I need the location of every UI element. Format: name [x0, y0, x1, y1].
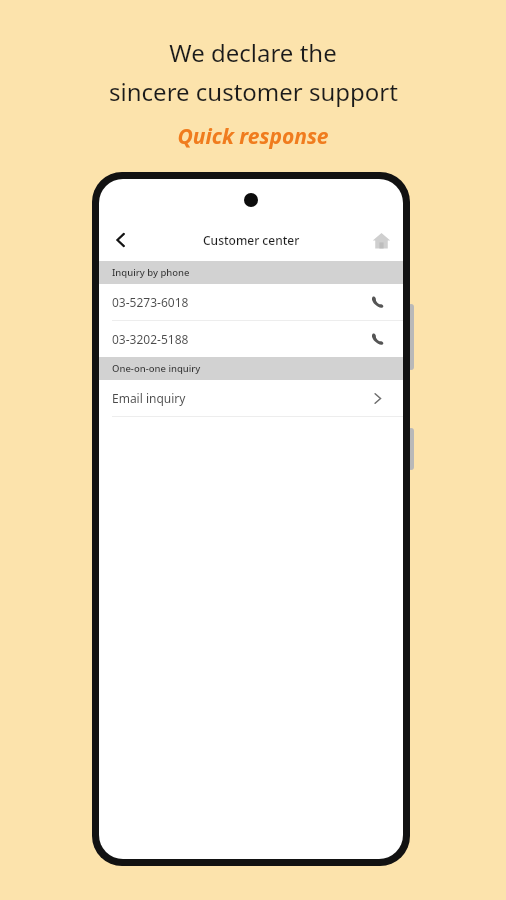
staticText: Customer center: [203, 232, 300, 248]
staticText: 03-3202-5188: [112, 331, 189, 347]
staticText: We declare the: [169, 36, 337, 69]
button[interactable]: Back: [99, 219, 143, 261]
staticText: Email inquiry: [112, 390, 186, 406]
staticText: One-on-one inquiry: [112, 362, 201, 375]
staticText: Quick response: [177, 122, 329, 151]
staticText: Inquiry by phone: [112, 266, 190, 279]
button[interactable]: Home: [359, 219, 403, 261]
staticText: sincere customer support: [109, 75, 398, 108]
staticText: 03-5273-6018: [112, 294, 189, 310]
button[interactable]: 03-5273-6018: [99, 284, 403, 320]
button[interactable]: Email inquiry: [99, 380, 403, 416]
button[interactable]: 03-3202-5188: [99, 321, 403, 357]
